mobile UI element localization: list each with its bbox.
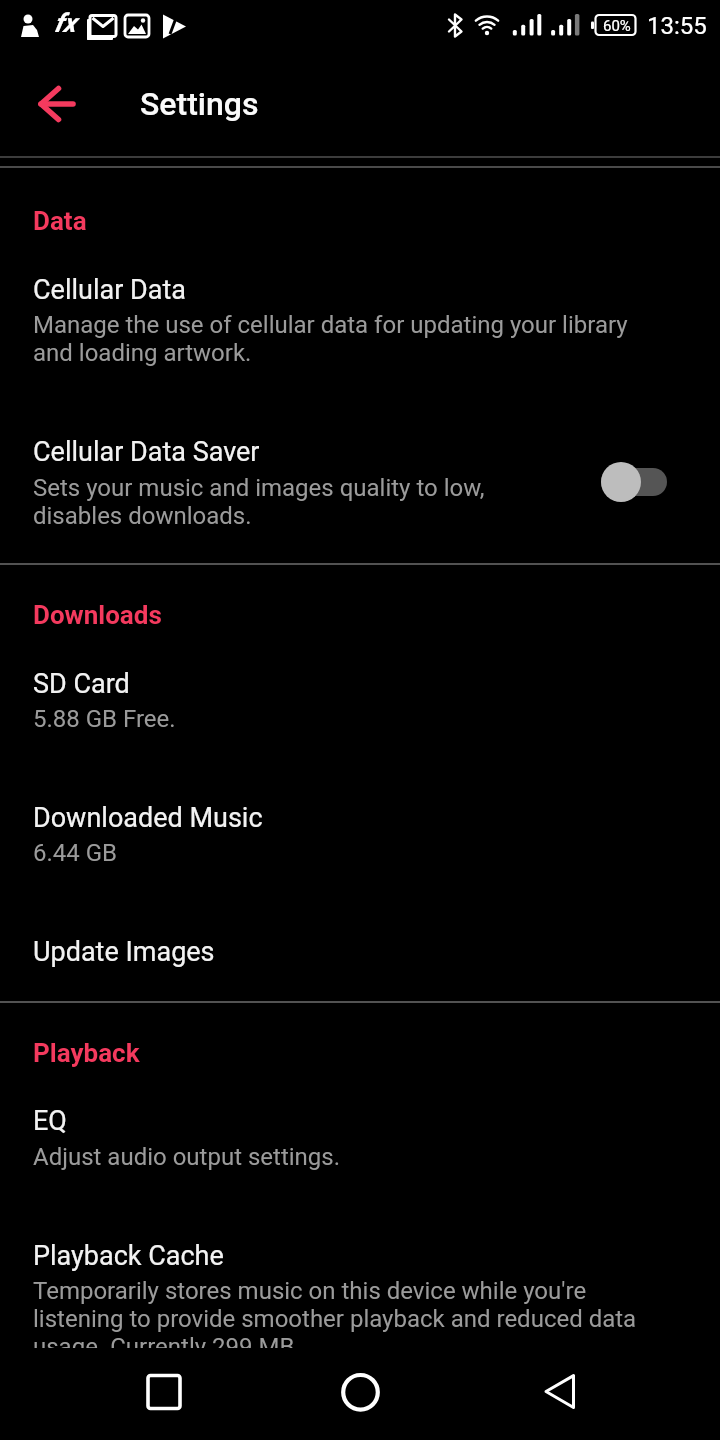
staticText: Sets your music and images quality to lo… — [33, 474, 485, 530]
button[interactable] — [127, 1356, 199, 1432]
button[interactable]: Cellular Data — [0, 252, 720, 374]
staticText: 13:55 — [647, 12, 707, 40]
button[interactable] — [22, 74, 92, 134]
button[interactable]: Cellular Data Saver — [0, 420, 720, 555]
staticText: Temporarily stores music on this device … — [33, 1277, 637, 1361]
staticText: SD Card — [33, 668, 130, 700]
staticText: Update Images — [33, 936, 215, 968]
button[interactable]: SD Card — [0, 655, 720, 755]
staticText: 5.88 GB Free. — [33, 705, 176, 733]
staticText: 6.44 GB — [33, 839, 118, 867]
staticText: Adjust audio output settings. — [33, 1143, 341, 1171]
button[interactable]: Update Images — [0, 925, 720, 985]
staticText: Downloaded Music — [33, 802, 263, 834]
staticText: Downloads — [33, 600, 162, 630]
button[interactable]: EQ — [0, 1095, 720, 1190]
staticText: Cellular Data — [33, 274, 186, 306]
staticText: Cellular Data Saver — [33, 436, 260, 468]
staticText: fx — [54, 8, 76, 38]
staticText: 60% — [603, 17, 631, 35]
staticText: Playback Cache — [33, 1240, 224, 1272]
staticText: Data — [33, 206, 87, 236]
staticText: Playback — [33, 1038, 140, 1068]
button[interactable]: Downloaded Music — [0, 790, 720, 890]
staticText: Settings — [140, 85, 259, 123]
staticText: EQ — [33, 1105, 67, 1137]
staticText: Manage the use of cellular data for upda… — [33, 311, 628, 367]
button[interactable]: Playback Cache — [0, 1225, 720, 1348]
button[interactable] — [524, 1356, 596, 1432]
button[interactable] — [324, 1356, 396, 1432]
